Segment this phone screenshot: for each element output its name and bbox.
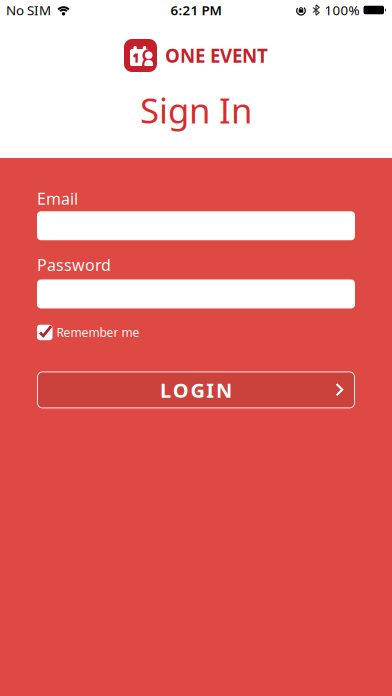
button[interactable]: Email (37, 211, 355, 240)
button[interactable]: Remember me (37, 324, 139, 340)
button[interactable]: Password (37, 279, 355, 308)
staticText: 100% (324, 1, 359, 19)
staticText: Sign In (140, 87, 252, 133)
staticText: Remember me (56, 324, 139, 340)
staticText: No SIM (6, 1, 51, 19)
staticText: Password (37, 254, 111, 275)
staticText: ONE EVENT (165, 43, 268, 68)
staticText: LOGIN (160, 377, 232, 403)
staticText: Email (37, 188, 78, 209)
button[interactable]: LOGIN (37, 371, 355, 408)
staticText: 6:21 PM (170, 1, 221, 19)
